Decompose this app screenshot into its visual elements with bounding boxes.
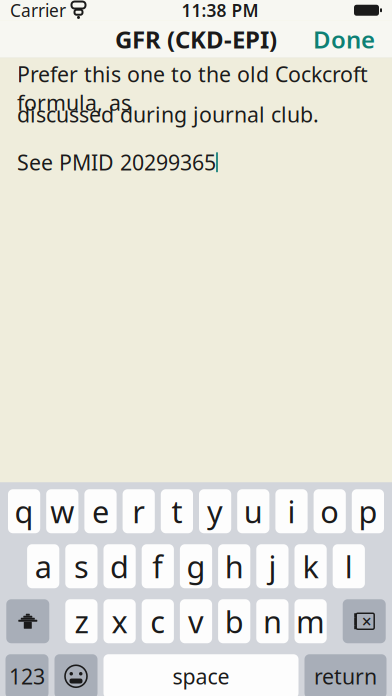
staticText: y bbox=[207, 491, 223, 532]
staticText: Carrier bbox=[10, 0, 66, 22]
button[interactable]: q bbox=[8, 489, 40, 533]
staticText: p bbox=[358, 491, 377, 532]
staticText: w bbox=[50, 491, 74, 532]
button[interactable]: space bbox=[103, 654, 298, 696]
button[interactable]: p bbox=[352, 489, 384, 533]
button[interactable]: 123 bbox=[5, 654, 48, 696]
staticText: a bbox=[35, 546, 52, 587]
button[interactable]: o bbox=[314, 489, 346, 533]
staticText: c bbox=[150, 601, 165, 642]
staticText: o bbox=[320, 491, 339, 532]
button[interactable]: e bbox=[84, 489, 117, 533]
button[interactable]: g bbox=[180, 544, 212, 588]
button[interactable]: Done bbox=[301, 17, 387, 61]
staticText: u bbox=[244, 491, 263, 532]
staticText: x bbox=[112, 601, 128, 642]
button[interactable]: k bbox=[294, 544, 327, 588]
staticText: e bbox=[92, 491, 109, 532]
staticText: space bbox=[172, 662, 229, 690]
staticText: t bbox=[171, 491, 182, 532]
button[interactable]: Emoji bbox=[54, 654, 97, 696]
button[interactable]: l bbox=[333, 544, 365, 588]
staticText: × bbox=[362, 610, 372, 633]
button[interactable]: Delete bbox=[343, 599, 386, 643]
staticText: discussed during journal club. bbox=[17, 100, 319, 128]
staticText: j bbox=[268, 546, 276, 587]
button[interactable]: m bbox=[294, 599, 327, 643]
staticText: s bbox=[74, 546, 89, 587]
button[interactable]: i bbox=[275, 489, 308, 533]
button[interactable]: n bbox=[256, 599, 288, 643]
staticText: Prefer this one to the old Cockcroft for… bbox=[17, 60, 368, 117]
button[interactable]: d bbox=[103, 544, 136, 588]
button[interactable]: t bbox=[161, 489, 193, 533]
button[interactable]: c bbox=[142, 599, 174, 643]
staticText: return bbox=[314, 662, 377, 690]
button[interactable]: v bbox=[180, 599, 212, 643]
button[interactable]: w bbox=[46, 489, 78, 533]
button[interactable]: b bbox=[218, 599, 250, 643]
button[interactable]: x bbox=[103, 599, 136, 643]
staticText: m bbox=[296, 601, 325, 642]
button[interactable]: y bbox=[199, 489, 231, 533]
button[interactable]: Shift bbox=[6, 599, 49, 643]
staticText: b bbox=[225, 601, 244, 642]
button[interactable]: u bbox=[237, 489, 269, 533]
staticText: l bbox=[345, 546, 353, 587]
staticText: q bbox=[15, 491, 34, 532]
button[interactable]: j bbox=[256, 544, 288, 588]
button[interactable]: f bbox=[142, 544, 174, 588]
button[interactable]: s bbox=[65, 544, 97, 588]
button[interactable]: a bbox=[27, 544, 59, 588]
button[interactable]: h bbox=[218, 544, 250, 588]
staticText: i bbox=[287, 491, 295, 532]
staticText: z bbox=[74, 601, 88, 642]
staticText: 123 bbox=[9, 662, 45, 690]
staticText: v bbox=[188, 601, 204, 642]
staticText: 11:38 PM bbox=[181, 0, 258, 22]
staticText: g bbox=[186, 546, 205, 587]
staticText: k bbox=[303, 546, 319, 587]
staticText: h bbox=[225, 546, 244, 587]
staticText: n bbox=[263, 601, 282, 642]
staticText: r bbox=[132, 491, 145, 532]
button[interactable]: r bbox=[123, 489, 155, 533]
staticText: f bbox=[152, 546, 163, 587]
staticText: d bbox=[110, 546, 129, 587]
staticText: See PMID 20299365 bbox=[17, 148, 216, 176]
button[interactable]: z bbox=[65, 599, 97, 643]
staticText: Done bbox=[313, 23, 375, 55]
staticText: GFR (CKD-EPI) bbox=[115, 23, 277, 55]
button[interactable]: return bbox=[304, 654, 386, 696]
